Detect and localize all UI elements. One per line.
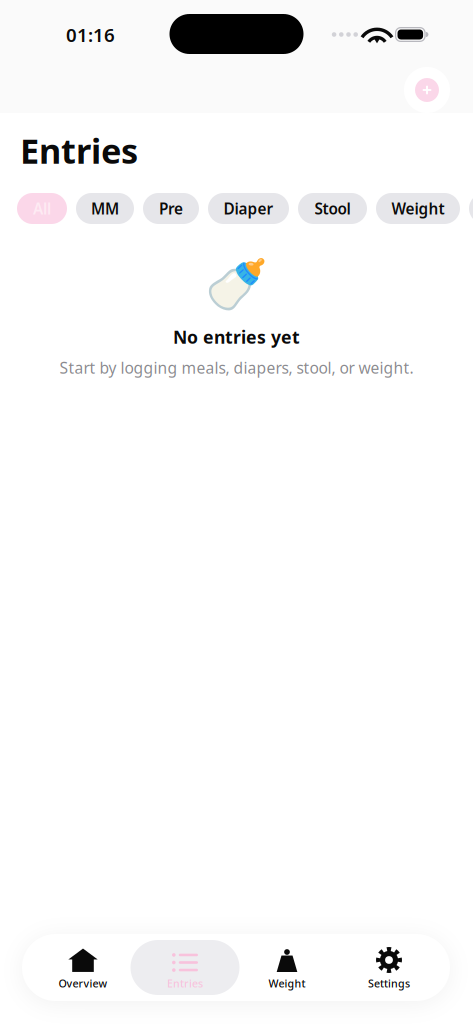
button[interactable]: Stool [298,193,367,224]
staticText: 01:16 [66,22,115,47]
staticText: Settings [368,976,410,990]
staticText: Diaper [223,198,273,219]
staticText: Overview [58,976,107,990]
staticText: All [33,198,51,219]
button[interactable]: Pre [143,193,199,224]
button[interactable]: MM [76,193,134,224]
staticText: Start by logging meals, diapers, stool, … [59,357,413,378]
staticText: Weight [391,198,444,219]
staticText: Entries [167,976,203,990]
button[interactable]: Weight [236,940,338,995]
staticText: 🍼 [205,256,268,313]
staticText: Entries [20,127,138,174]
button[interactable]: Overview [32,940,134,995]
button[interactable]: Weight [376,193,460,224]
button[interactable]: Entries [134,940,236,995]
staticText: Stool [314,198,350,219]
button[interactable]: All [17,193,67,224]
staticText: MM [91,198,119,219]
button[interactable]: Add entry [404,67,450,113]
staticText: No entries yet [173,325,300,349]
button[interactable]: Settings [338,940,440,995]
button[interactable]: Diaper [208,193,289,224]
button[interactable]: Dia [469,193,473,224]
staticText: Weight [268,976,305,990]
staticText: Pre [159,198,183,219]
